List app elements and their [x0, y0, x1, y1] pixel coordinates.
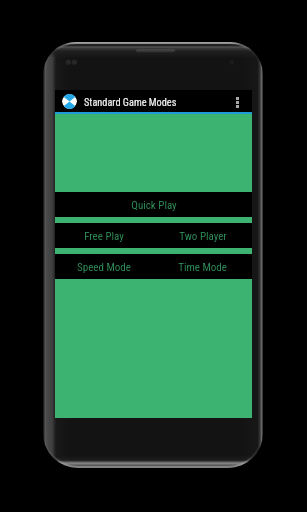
- button[interactable]: Quick Play: [55, 192, 252, 217]
- button[interactable]: Free Play: [55, 223, 153, 248]
- button[interactable]: More options: [230, 93, 246, 109]
- staticText: Speed Mode: [77, 261, 131, 274]
- staticText: Time Mode: [178, 261, 227, 274]
- staticText: Two Player: [179, 230, 227, 243]
- button[interactable]: Two Player: [153, 223, 252, 248]
- staticText: Free Play: [84, 230, 124, 243]
- button[interactable]: Speed Mode: [55, 254, 153, 279]
- staticText: Standard Game Modes: [84, 96, 177, 108]
- button[interactable]: Time Mode: [153, 254, 252, 279]
- button[interactable]: App icon: [62, 94, 77, 109]
- staticText: Quick Play: [131, 199, 177, 212]
